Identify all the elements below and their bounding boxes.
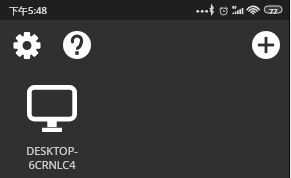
staticText: DESKTOP- 6CRNLC4	[26, 143, 78, 172]
staticText: 77	[269, 6, 278, 16]
button[interactable]: Add	[241, 20, 291, 70]
button[interactable]: Settings	[2, 20, 52, 70]
button[interactable]: DESKTOP- 6CRNLC4	[0, 70, 104, 172]
staticText: 下午5:48	[9, 4, 47, 17]
button[interactable]: Help	[52, 20, 102, 70]
